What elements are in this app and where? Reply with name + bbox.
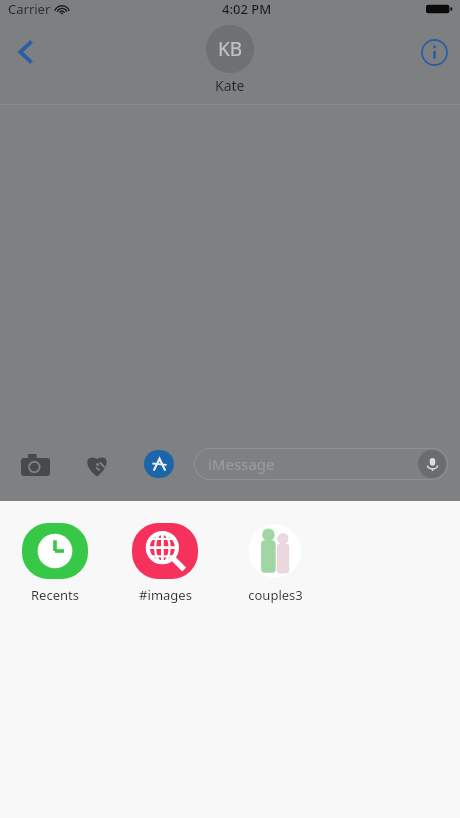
button[interactable]: Camera: [16, 445, 54, 483]
button[interactable]: Dictate: [418, 450, 446, 478]
staticText: Kate: [215, 76, 245, 95]
staticText: iMessage: [208, 454, 275, 474]
staticText: Carrier: [8, 0, 51, 18]
staticText: #images: [139, 586, 192, 604]
button[interactable]: KB: [206, 25, 254, 95]
button[interactable]: Digital Touch: [78, 445, 116, 483]
button[interactable]: iMessage: [194, 448, 448, 480]
button[interactable]: Recents: [0, 523, 110, 604]
button[interactable]: Details: [414, 32, 454, 72]
staticText: couples3: [248, 586, 303, 604]
button[interactable]: #images: [110, 523, 220, 604]
button[interactable]: App Store: [140, 445, 178, 483]
button[interactable]: Back: [4, 30, 48, 74]
staticText: KB: [218, 36, 243, 62]
staticText: 4:02 PM: [222, 0, 272, 18]
staticText: Recents: [31, 586, 79, 604]
button[interactable]: couples3: [220, 523, 330, 604]
